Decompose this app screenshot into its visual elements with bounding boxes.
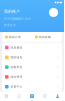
button[interactable]: 我的订单 xyxy=(2,32,32,42)
button[interactable]: 地址管理 xyxy=(2,72,62,82)
staticText: 消息通知 xyxy=(11,46,23,49)
button[interactable]: Profile xyxy=(51,92,64,101)
button[interactable]: 我的钱包 xyxy=(2,52,62,62)
button[interactable]: Publish xyxy=(26,92,38,101)
button[interactable]: 设置中心 xyxy=(2,82,62,92)
button[interactable]: 优惠券包 xyxy=(2,62,62,72)
staticText: hello@example.com xyxy=(4,17,30,20)
button[interactable]: 消息通知 xyxy=(2,43,62,52)
button[interactable]: Notifications xyxy=(38,92,51,101)
staticText: 我的钱包 xyxy=(11,56,23,59)
button[interactable]: Home xyxy=(0,92,13,101)
staticText: 我的收藏 xyxy=(39,35,51,39)
staticText: 普通会员 xyxy=(4,23,16,27)
button[interactable]: Discover xyxy=(13,92,26,101)
staticText: 我的账户 xyxy=(4,9,20,14)
staticText: 我的订单 xyxy=(9,35,21,39)
staticText: 优惠券包 xyxy=(11,65,23,69)
staticText: 设置中心 xyxy=(11,85,23,88)
staticText: 地址管理 xyxy=(11,75,23,79)
button[interactable]: 我的收藏 xyxy=(32,32,62,42)
